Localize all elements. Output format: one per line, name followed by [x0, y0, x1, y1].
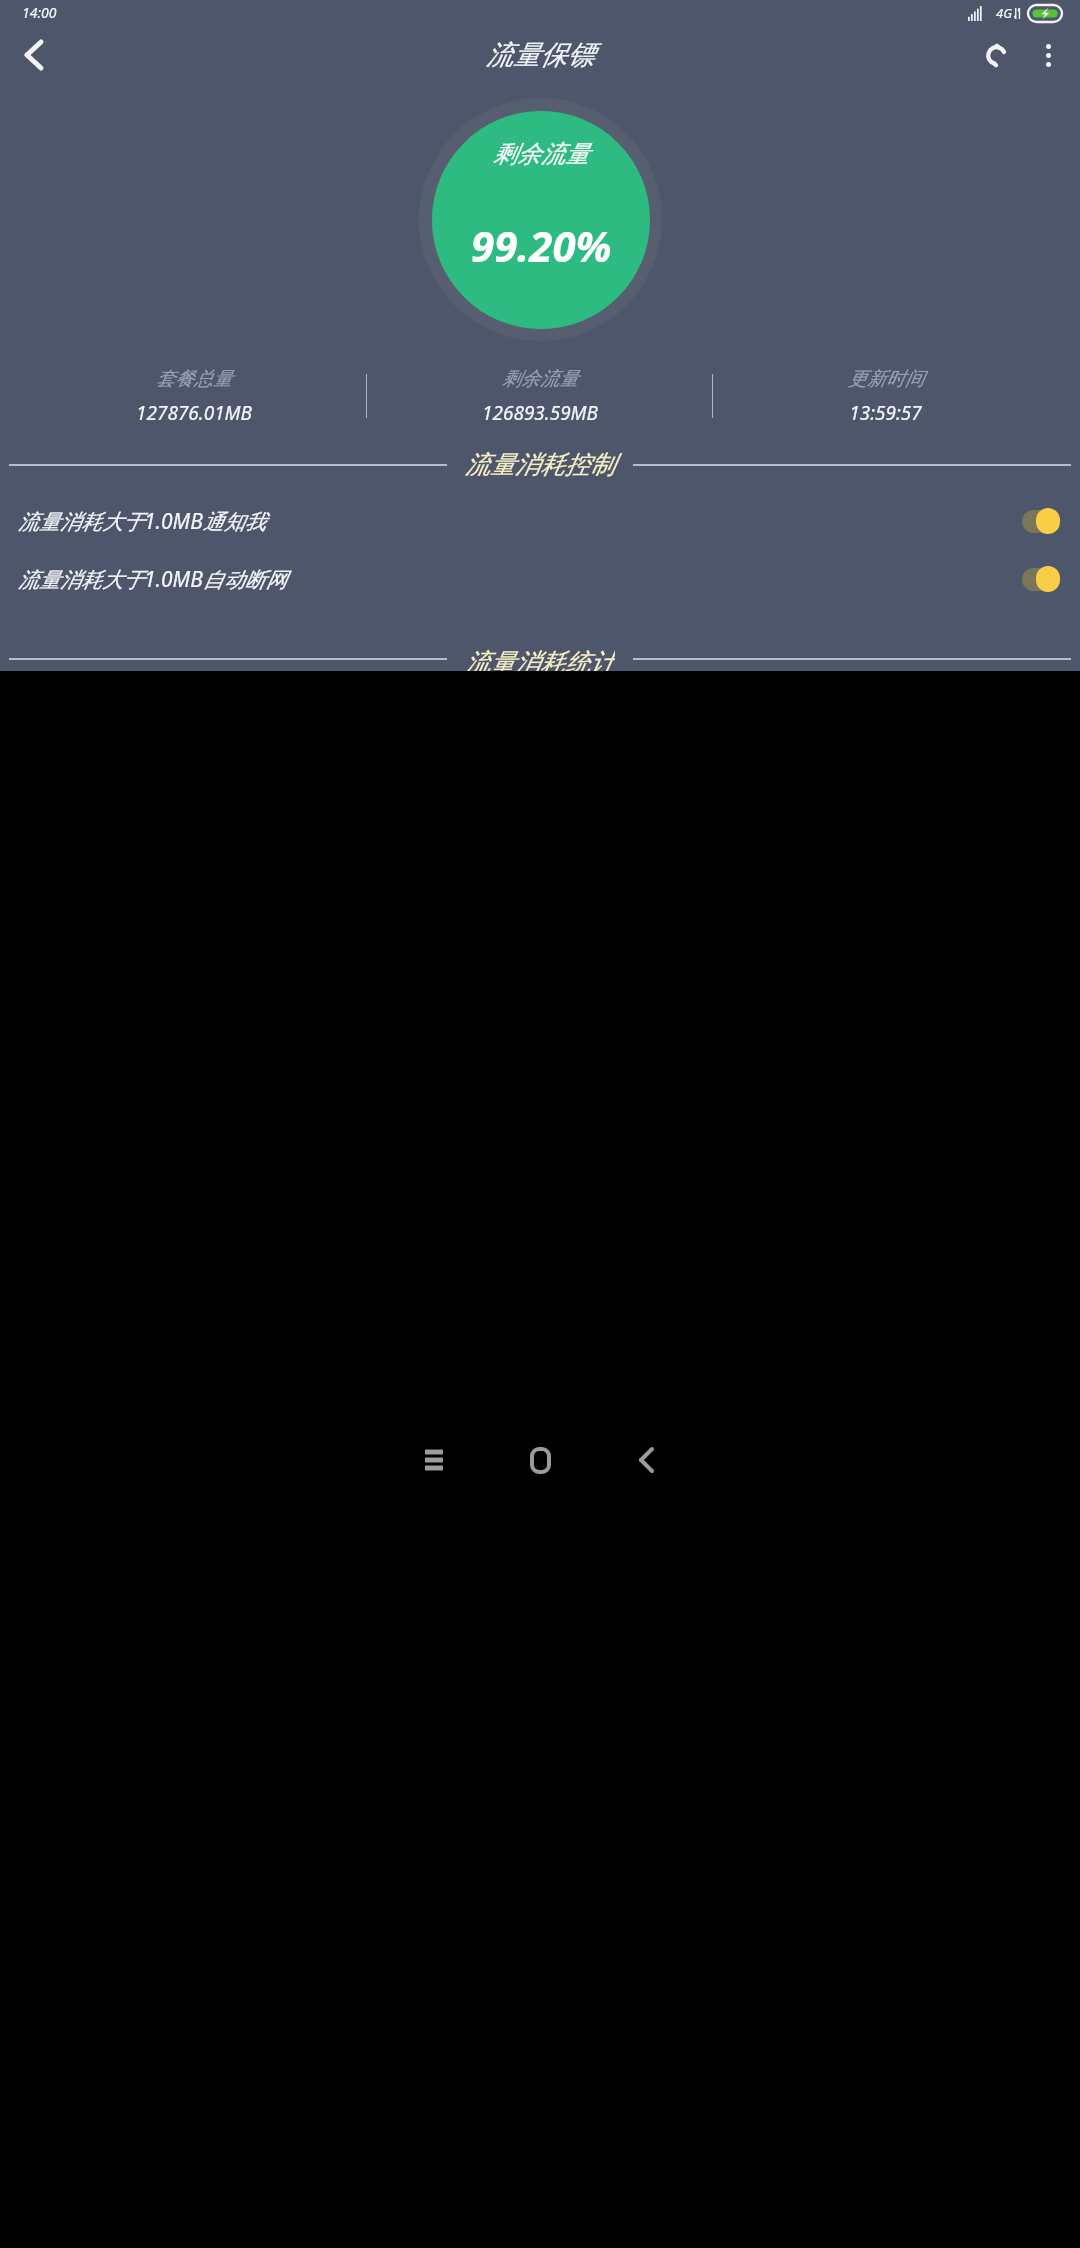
staticText: 4G [996, 4, 1012, 22]
staticText: 126893.59MB [482, 400, 598, 425]
staticText: 剩余流量 [502, 367, 578, 391]
button[interactable]: 流量消耗大于1.0MB自动断网 [0, 555, 1080, 603]
staticText: 14:00 [22, 3, 57, 22]
staticText: 流量消耗控制 [465, 449, 615, 480]
staticText: 更新时间 [848, 367, 924, 391]
staticText: 流量消耗统计 [465, 647, 615, 671]
button[interactable]: Refresh [970, 29, 1022, 81]
button[interactable]: 流量消耗大于1.0MB通知我 [0, 497, 1080, 545]
button[interactable]: 更新时间 [713, 367, 1058, 425]
button[interactable]: 剩余流量 [432, 111, 650, 329]
staticText: 流量保镖 [486, 38, 594, 72]
button[interactable]: Recent apps [397, 1423, 471, 1497]
button[interactable]: Back [609, 1423, 683, 1497]
staticText: 99.20% [471, 217, 612, 274]
button[interactable]: 剩余流量 [367, 367, 712, 425]
button[interactable]: More options [1022, 29, 1074, 81]
button[interactable]: Back [6, 27, 62, 83]
staticText: 13:59:57 [849, 400, 922, 425]
staticText: 流量消耗大于1.0MB通知我 [18, 507, 1022, 536]
staticText: 剩余流量 [493, 139, 589, 169]
staticText: 套餐总量 [156, 367, 232, 391]
button[interactable]: Home [503, 1423, 577, 1497]
staticText: 流量消耗大于1.0MB自动断网 [18, 565, 1022, 594]
button[interactable]: 套餐总量 [22, 367, 366, 425]
staticText: 127876.01MB [136, 400, 252, 425]
